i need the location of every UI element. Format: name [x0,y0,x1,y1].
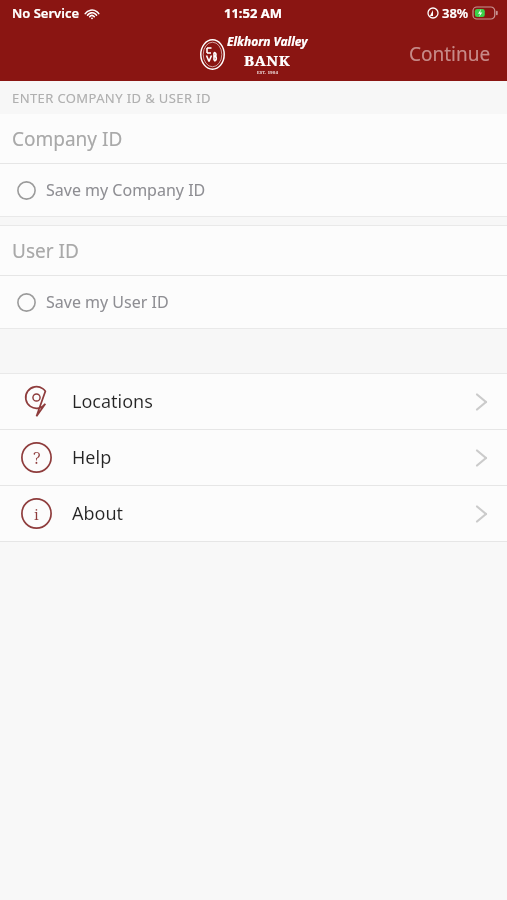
button[interactable]: Company ID [0,114,507,163]
staticText: Save my Company ID [46,179,206,201]
staticText: Help [72,445,112,470]
button[interactable]: Save my User ID [0,276,507,328]
staticText: ? [33,447,41,469]
staticText: Elkhorn Valley [227,33,308,49]
button[interactable]: User ID [0,226,507,275]
staticText: 38% [442,4,469,22]
button[interactable]: Save my Company ID [0,164,507,216]
button[interactable]: Continue [393,31,507,77]
staticText: No Service [12,4,80,22]
staticText: About [72,501,124,526]
other: Help [21,442,52,473]
other: About [21,498,52,529]
staticText: Save my User ID [46,291,169,313]
staticText: User ID [12,238,79,264]
staticText: 11:52 AM [224,4,283,22]
staticText: EST. 1904 [257,70,279,75]
staticText: Locations [72,389,153,414]
button[interactable]: About [0,486,507,541]
staticText: BANK [244,50,291,70]
button[interactable]: Locations [0,374,507,429]
staticText: Company ID [12,126,123,152]
button[interactable]: Help [0,430,507,485]
staticText: i [34,504,39,524]
staticText: Continue [409,41,491,67]
staticText: ENTER COMPANY ID & USER ID [12,89,211,107]
other: Locations [23,385,50,418]
